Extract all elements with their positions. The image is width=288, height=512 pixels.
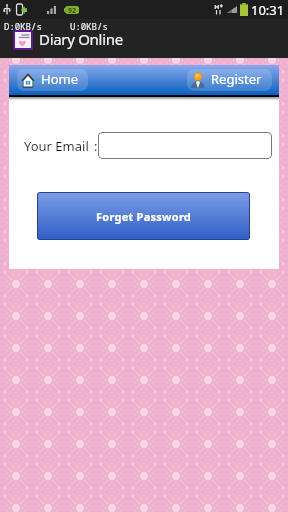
staticText: Register [211,70,262,88]
button[interactable]: Home [17,69,88,91]
button[interactable]: Register [187,69,272,91]
staticText: U:0KB/s [70,20,108,32]
staticText: 92 [68,6,77,14]
button[interactable] [98,132,272,159]
staticText: D:0KB/s [4,20,42,32]
button[interactable]: Forget Password [37,192,250,240]
staticText: 10:31 [251,1,285,19]
staticText: Home [41,70,78,88]
staticText: Your Email [24,137,89,155]
staticText: Diary Online [39,29,123,49]
staticText: Forget Password [96,209,192,224]
staticText: : [94,137,98,155]
